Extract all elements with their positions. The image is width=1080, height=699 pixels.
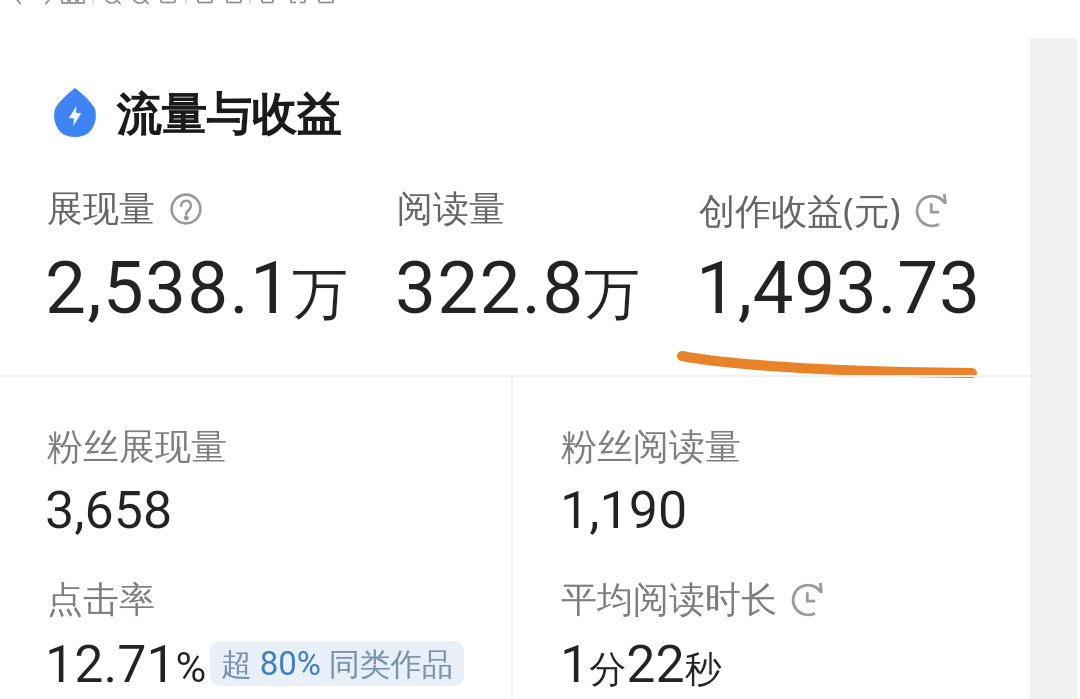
staticText: 超 80% 同类作品 (221, 644, 453, 684)
other: History (915, 194, 949, 228)
staticText: 1,190 (560, 480, 688, 541)
staticText: 平均阅读时长 (561, 577, 777, 622)
staticText: 2,538.1万 (45, 245, 349, 331)
staticText: 阅读量 (397, 186, 505, 231)
button[interactable]: 平均阅读时长 (561, 577, 825, 622)
staticText: 1,493.73 (696, 245, 981, 331)
button[interactable]: 流量与收益 (40, 72, 360, 150)
staticText: 12.71% (45, 634, 207, 695)
staticText: 3,658 (45, 480, 173, 541)
button[interactable]: 创作收益(元) (699, 186, 949, 235)
staticText: 流量与收益 (116, 87, 341, 144)
staticText: 粉丝阅读量 (561, 424, 741, 469)
staticText: 创作收益(元) (699, 186, 901, 235)
staticText: 点击率 (47, 577, 155, 622)
staticText: 粉丝展现量 (47, 424, 227, 469)
button[interactable]: 超 80% 同类作品 (210, 641, 464, 686)
staticText: 展现量 (47, 186, 155, 231)
other: Help (169, 192, 203, 226)
staticText: 1分22秒 (560, 634, 722, 695)
button[interactable]: 展现量 (47, 186, 203, 231)
staticText: 322.8万 (395, 245, 641, 331)
other: History (791, 583, 825, 617)
